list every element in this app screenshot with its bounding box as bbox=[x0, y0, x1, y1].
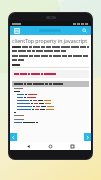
staticText: clientTop property in javascript bbox=[12, 37, 88, 44]
button[interactable]: Open menu bbox=[13, 27, 20, 34]
button[interactable]: Next bbox=[84, 133, 91, 141]
button[interactable]: Recent apps bbox=[69, 143, 76, 150]
button[interactable]: Search bbox=[81, 27, 88, 34]
button[interactable]: Home bbox=[47, 143, 54, 150]
button[interactable]: Previous bbox=[10, 133, 17, 141]
button[interactable]: Back bbox=[25, 143, 32, 150]
